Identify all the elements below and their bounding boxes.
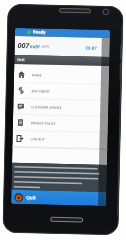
staticText: test xyxy=(17,57,25,62)
staticText: LOG OUT xyxy=(30,137,45,142)
button[interactable]: HOME xyxy=(14,67,109,85)
button[interactable]: PRIVACY POLICY xyxy=(13,115,108,133)
staticText: €0.87 xyxy=(86,44,98,51)
staticText: PRIVACY POLICY xyxy=(31,121,56,126)
staticText: BUY CREDIT xyxy=(32,89,51,94)
staticText: 007 xyxy=(17,41,30,51)
button[interactable]: LOG OUT xyxy=(12,131,108,149)
staticText: Ready xyxy=(33,29,46,36)
staticText: Quit xyxy=(26,194,36,200)
button[interactable]: BUY CREDIT xyxy=(13,83,109,101)
button[interactable]: 007 xyxy=(14,36,110,57)
staticText: HOME xyxy=(32,73,42,77)
staticText: CUSTOMER SERVICE xyxy=(31,105,62,110)
staticText: .com xyxy=(41,43,50,49)
staticText: VoIP xyxy=(30,43,41,49)
button[interactable]: Quit xyxy=(11,190,106,206)
button[interactable]: CUSTOMER SERVICE xyxy=(13,99,108,117)
